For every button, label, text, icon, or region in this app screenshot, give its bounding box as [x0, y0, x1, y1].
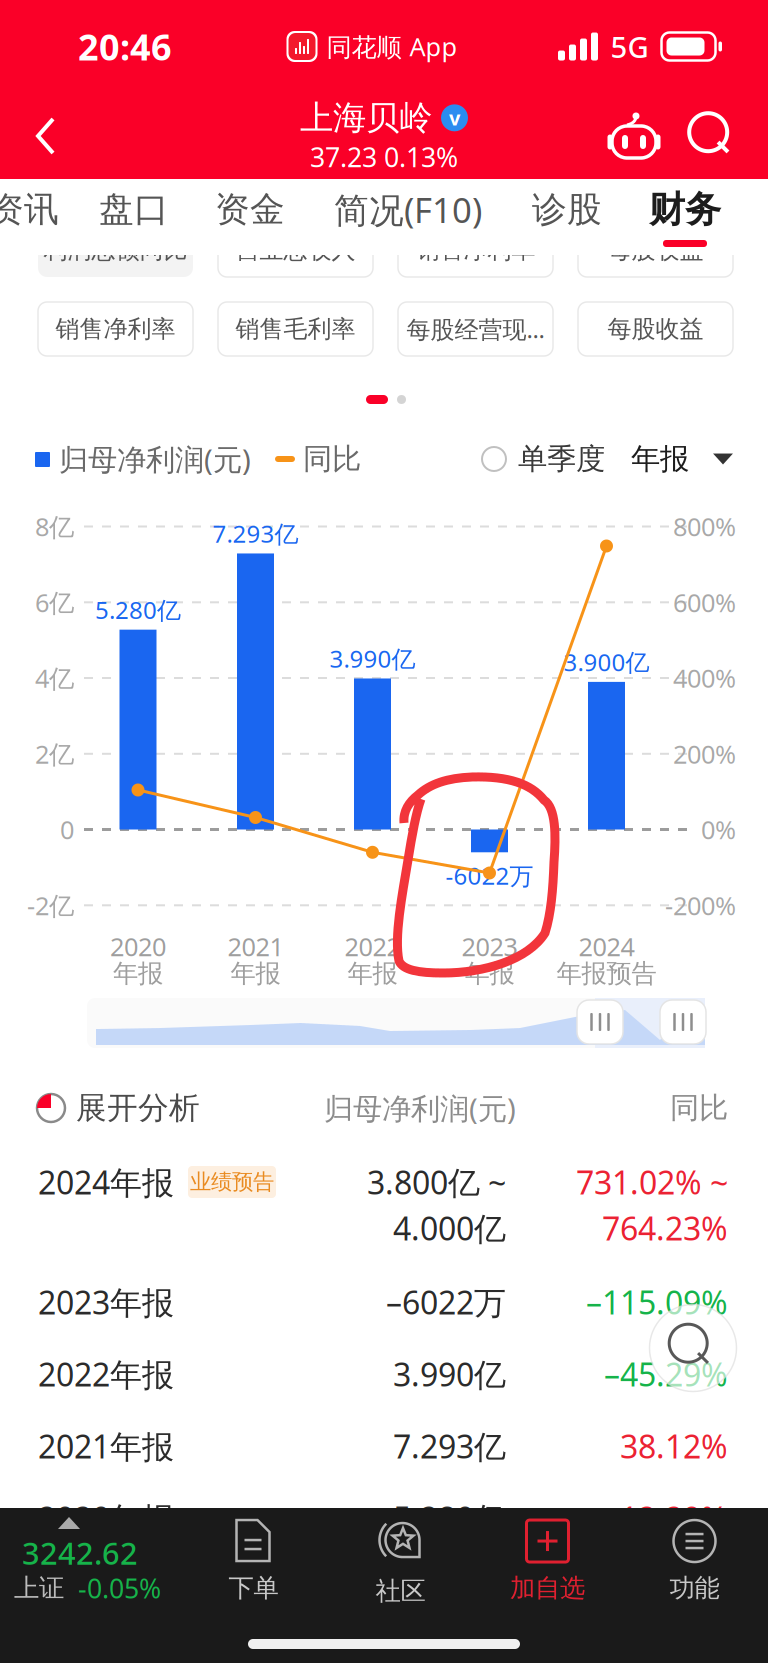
staticText: 诊股: [532, 188, 602, 231]
staticText: 3.800亿 ~: [367, 1160, 506, 1204]
staticText: 4亿: [35, 661, 74, 695]
button[interactable]: 利润总额同比: [38, 223, 193, 277]
button[interactable]: 销售毛利率: [218, 302, 373, 356]
staticText: 800%: [673, 509, 736, 544]
staticText: 单季度: [518, 440, 605, 477]
staticText: -200%: [665, 888, 736, 922]
button[interactable]: 下单: [180, 1508, 327, 1614]
staticText: 业绩预告: [190, 1169, 274, 1195]
staticText: 社区: [375, 1575, 425, 1607]
button[interactable]: 2024年报: [0, 1136, 768, 1256]
staticText: 7.293亿: [212, 517, 298, 550]
staticText: -6022万: [445, 859, 533, 892]
staticText: 加自选: [510, 1572, 585, 1604]
staticText: 2亿: [35, 736, 74, 771]
staticText: 12.29%: [620, 1496, 728, 1540]
staticText: 同比: [303, 440, 361, 477]
staticText: 销售毛利率: [235, 314, 355, 344]
staticText: 20:46: [78, 22, 172, 71]
button[interactable]: 2021年报: [0, 1400, 768, 1472]
staticText: 731.02% ~: [576, 1160, 728, 1204]
staticText: 销售净利率: [55, 314, 175, 344]
button[interactable]: Range end: [660, 1000, 706, 1044]
staticText: 上海贝岭: [300, 97, 432, 139]
button[interactable]: 功能: [621, 1508, 768, 1614]
staticText: 4.000亿: [393, 1206, 506, 1250]
staticText: 8亿: [35, 509, 74, 544]
staticText: –115.09%: [586, 1280, 728, 1324]
staticText: 3.900亿: [563, 645, 649, 678]
staticText: 5G: [610, 26, 648, 66]
staticText: 归母净利润(元): [324, 1088, 516, 1128]
staticText: 2020: [110, 929, 166, 964]
staticText: 5.280亿: [95, 593, 181, 626]
button[interactable]: 2023年报: [0, 1256, 768, 1328]
button[interactable]: 营业总收入: [218, 223, 373, 277]
button[interactable]: AI assistant: [594, 93, 674, 179]
staticText: 0%: [701, 812, 736, 847]
staticText: 年报: [347, 957, 397, 989]
staticText: 下单: [228, 1572, 278, 1604]
staticText: 5.280亿: [393, 1496, 506, 1540]
staticText: 每股经营现...: [406, 313, 544, 345]
button[interactable]: 盘口: [86, 179, 182, 255]
staticText: 7.293亿: [393, 1424, 506, 1468]
button[interactable]: 2020年报: [0, 1472, 768, 1544]
staticText: 每股收益: [607, 314, 703, 344]
button[interactable]: 加自选: [474, 1508, 621, 1614]
staticText: 利润总额同比: [43, 235, 187, 265]
button[interactable]: 销售净利率: [38, 302, 193, 356]
staticText: 2020年报: [38, 1496, 174, 1540]
staticText: v: [449, 104, 460, 131]
staticText: 财务: [649, 187, 721, 232]
staticText: 同比: [670, 1089, 728, 1126]
button[interactable]: 销售净利率: [398, 223, 553, 277]
button[interactable]: 每股收益: [578, 223, 733, 277]
staticText: 38.12%: [620, 1424, 728, 1468]
button[interactable]: 每股收益: [578, 302, 733, 356]
staticText: -2亿: [27, 888, 74, 922]
staticText: –6022万: [386, 1280, 506, 1324]
button[interactable]: Range start: [577, 1000, 623, 1044]
button[interactable]: 单季度: [482, 428, 612, 490]
staticText: 2024: [578, 929, 634, 964]
staticText: –45.29%: [604, 1352, 728, 1396]
button[interactable]: 资讯: [0, 179, 72, 255]
button[interactable]: 展开分析: [0, 1080, 200, 1136]
staticText: 功能: [669, 1572, 719, 1604]
staticText: 年报: [631, 440, 689, 477]
staticText: 2023: [461, 929, 517, 964]
staticText: 年报: [113, 957, 163, 989]
button[interactable]: Search: [674, 93, 750, 179]
staticText: 2022: [344, 929, 400, 964]
staticText: 3.990亿: [329, 642, 415, 675]
staticText: 销售净利率: [415, 235, 535, 265]
staticText: 2022年报: [38, 1352, 174, 1396]
staticText: 年报: [230, 957, 280, 989]
button[interactable]: Search: [648, 1303, 738, 1393]
button[interactable]: 2022年报: [0, 1328, 768, 1400]
button[interactable]: 3242.62: [0, 1508, 180, 1614]
button[interactable]: 诊股: [519, 179, 615, 255]
staticText: 简况(F10): [334, 186, 482, 233]
staticText: 764.23%: [602, 1206, 728, 1250]
staticText: 3242.62: [22, 1532, 138, 1574]
staticText: 37.23 0.13%: [310, 139, 458, 175]
staticText: 每股收益: [607, 235, 703, 265]
button[interactable]: 财务: [631, 179, 739, 255]
button[interactable]: 简况(F10): [320, 179, 496, 255]
staticText: 3.990亿: [393, 1352, 506, 1396]
button[interactable]: 资金: [202, 179, 298, 255]
staticText: 400%: [673, 661, 736, 695]
staticText: 年报: [464, 957, 514, 989]
button[interactable]: Back: [0, 93, 83, 179]
staticText: 2021: [227, 929, 283, 964]
button[interactable]: 社区: [327, 1508, 474, 1614]
staticText: 上证: [14, 1572, 64, 1604]
staticText: 0: [60, 812, 74, 847]
staticText: 同花顺 App: [326, 29, 457, 64]
button[interactable]: 每股经营现...: [398, 302, 553, 356]
staticText: 营业总收入: [235, 235, 355, 265]
staticText: 盘口: [99, 188, 169, 231]
button[interactable]: 年报: [631, 428, 735, 490]
